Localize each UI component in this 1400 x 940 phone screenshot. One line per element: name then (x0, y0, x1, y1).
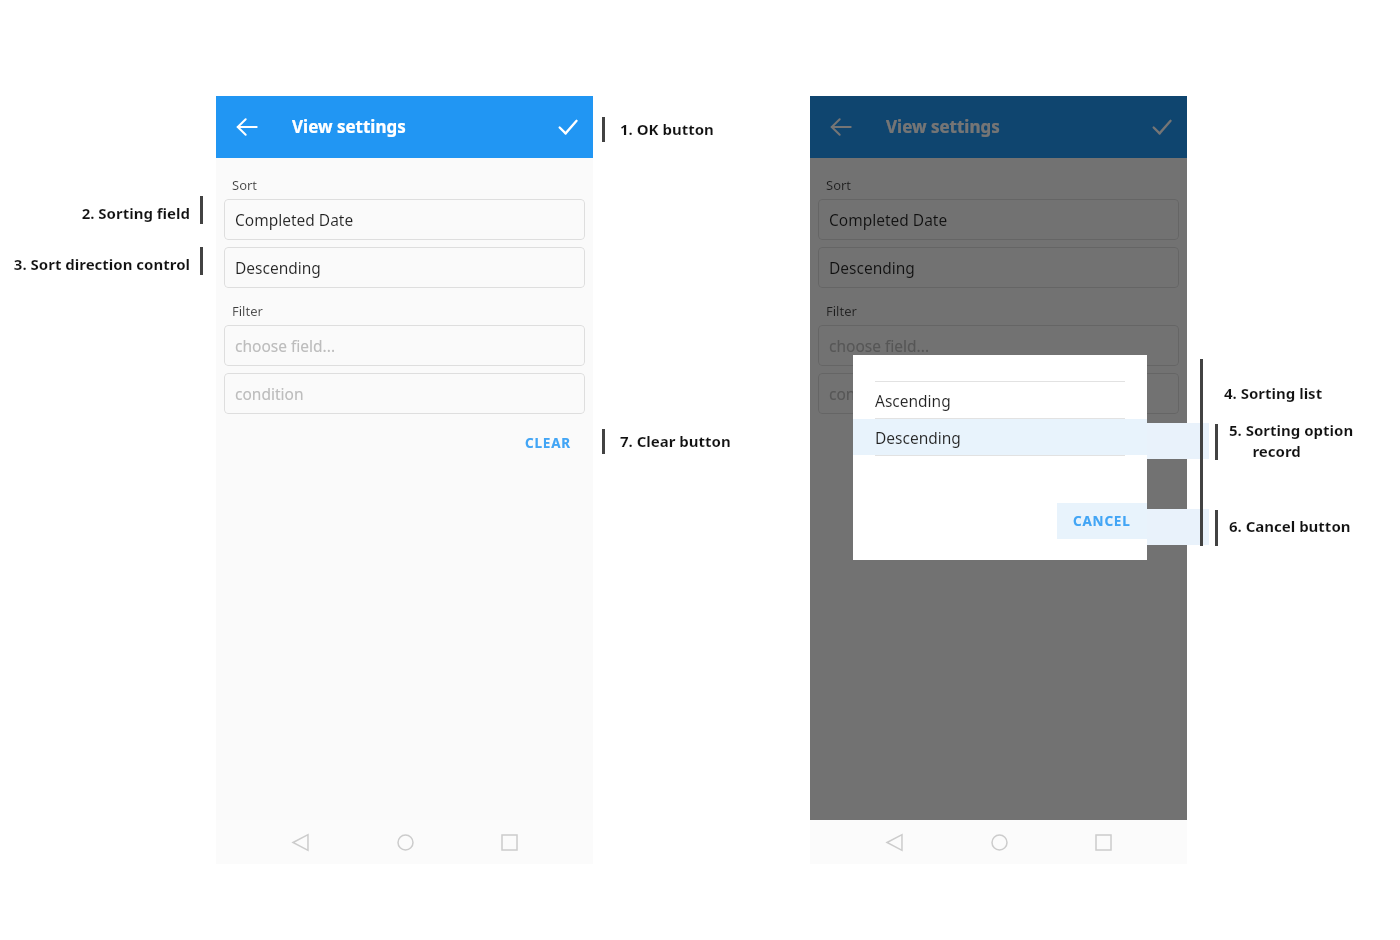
button[interactable]: condition (818, 373, 1179, 414)
button[interactable]: condition (224, 373, 585, 414)
button[interactable]: Recents (488, 821, 530, 863)
button[interactable]: Descending (853, 419, 1147, 455)
button[interactable]: Descending (224, 247, 585, 288)
button[interactable]: OK (1144, 109, 1180, 145)
button[interactable]: Recents (1082, 821, 1124, 863)
staticText: CANCEL (1073, 512, 1131, 530)
button[interactable]: Completed Date (818, 199, 1179, 240)
staticText: View settings (886, 115, 1000, 138)
button[interactable]: Ascending (853, 382, 1147, 418)
staticText: Sort (826, 176, 852, 194)
button[interactable]: Back (873, 821, 915, 863)
button[interactable]: choose field... (224, 325, 585, 366)
button[interactable]: OK (550, 109, 586, 145)
staticText: 7. Clear button (620, 431, 731, 451)
button[interactable]: Completed Date (224, 199, 585, 240)
staticText: 5. Sorting option record (1229, 420, 1354, 462)
staticText: choose field... (829, 335, 930, 356)
button[interactable]: choose field... (818, 325, 1179, 366)
button[interactable]: CLEAR (511, 426, 585, 460)
staticText: View settings (292, 115, 406, 138)
staticText: Filter (826, 302, 857, 320)
staticText: Ascending (875, 390, 951, 411)
button[interactable]: Home (978, 821, 1020, 863)
staticText: Descending (235, 257, 321, 278)
staticText: 3. Sort direction control (0, 254, 190, 274)
staticText: 6. Cancel button (1229, 516, 1351, 536)
button[interactable]: Back (823, 109, 859, 145)
staticText: Descending (875, 427, 961, 448)
staticText: 1. OK button (620, 119, 714, 139)
button[interactable]: Back (279, 821, 321, 863)
staticText: CLEAR (525, 434, 571, 452)
staticText: Filter (232, 302, 263, 320)
staticText: Descending (829, 257, 915, 278)
staticText: condition (829, 383, 898, 404)
button[interactable]: Descending (818, 247, 1179, 288)
staticText: 4. Sorting list (1224, 383, 1323, 403)
staticText: Sort (232, 176, 258, 194)
staticText: Completed Date (235, 209, 354, 230)
staticText: condition (235, 383, 304, 404)
button[interactable]: CANCEL (1057, 503, 1147, 539)
staticText: choose field... (235, 335, 336, 356)
staticText: 2. Sorting field (0, 203, 190, 223)
staticText: Completed Date (829, 209, 948, 230)
button[interactable]: Home (384, 821, 426, 863)
button[interactable]: CLEAR (1105, 426, 1179, 460)
button[interactable]: Back (229, 109, 265, 145)
